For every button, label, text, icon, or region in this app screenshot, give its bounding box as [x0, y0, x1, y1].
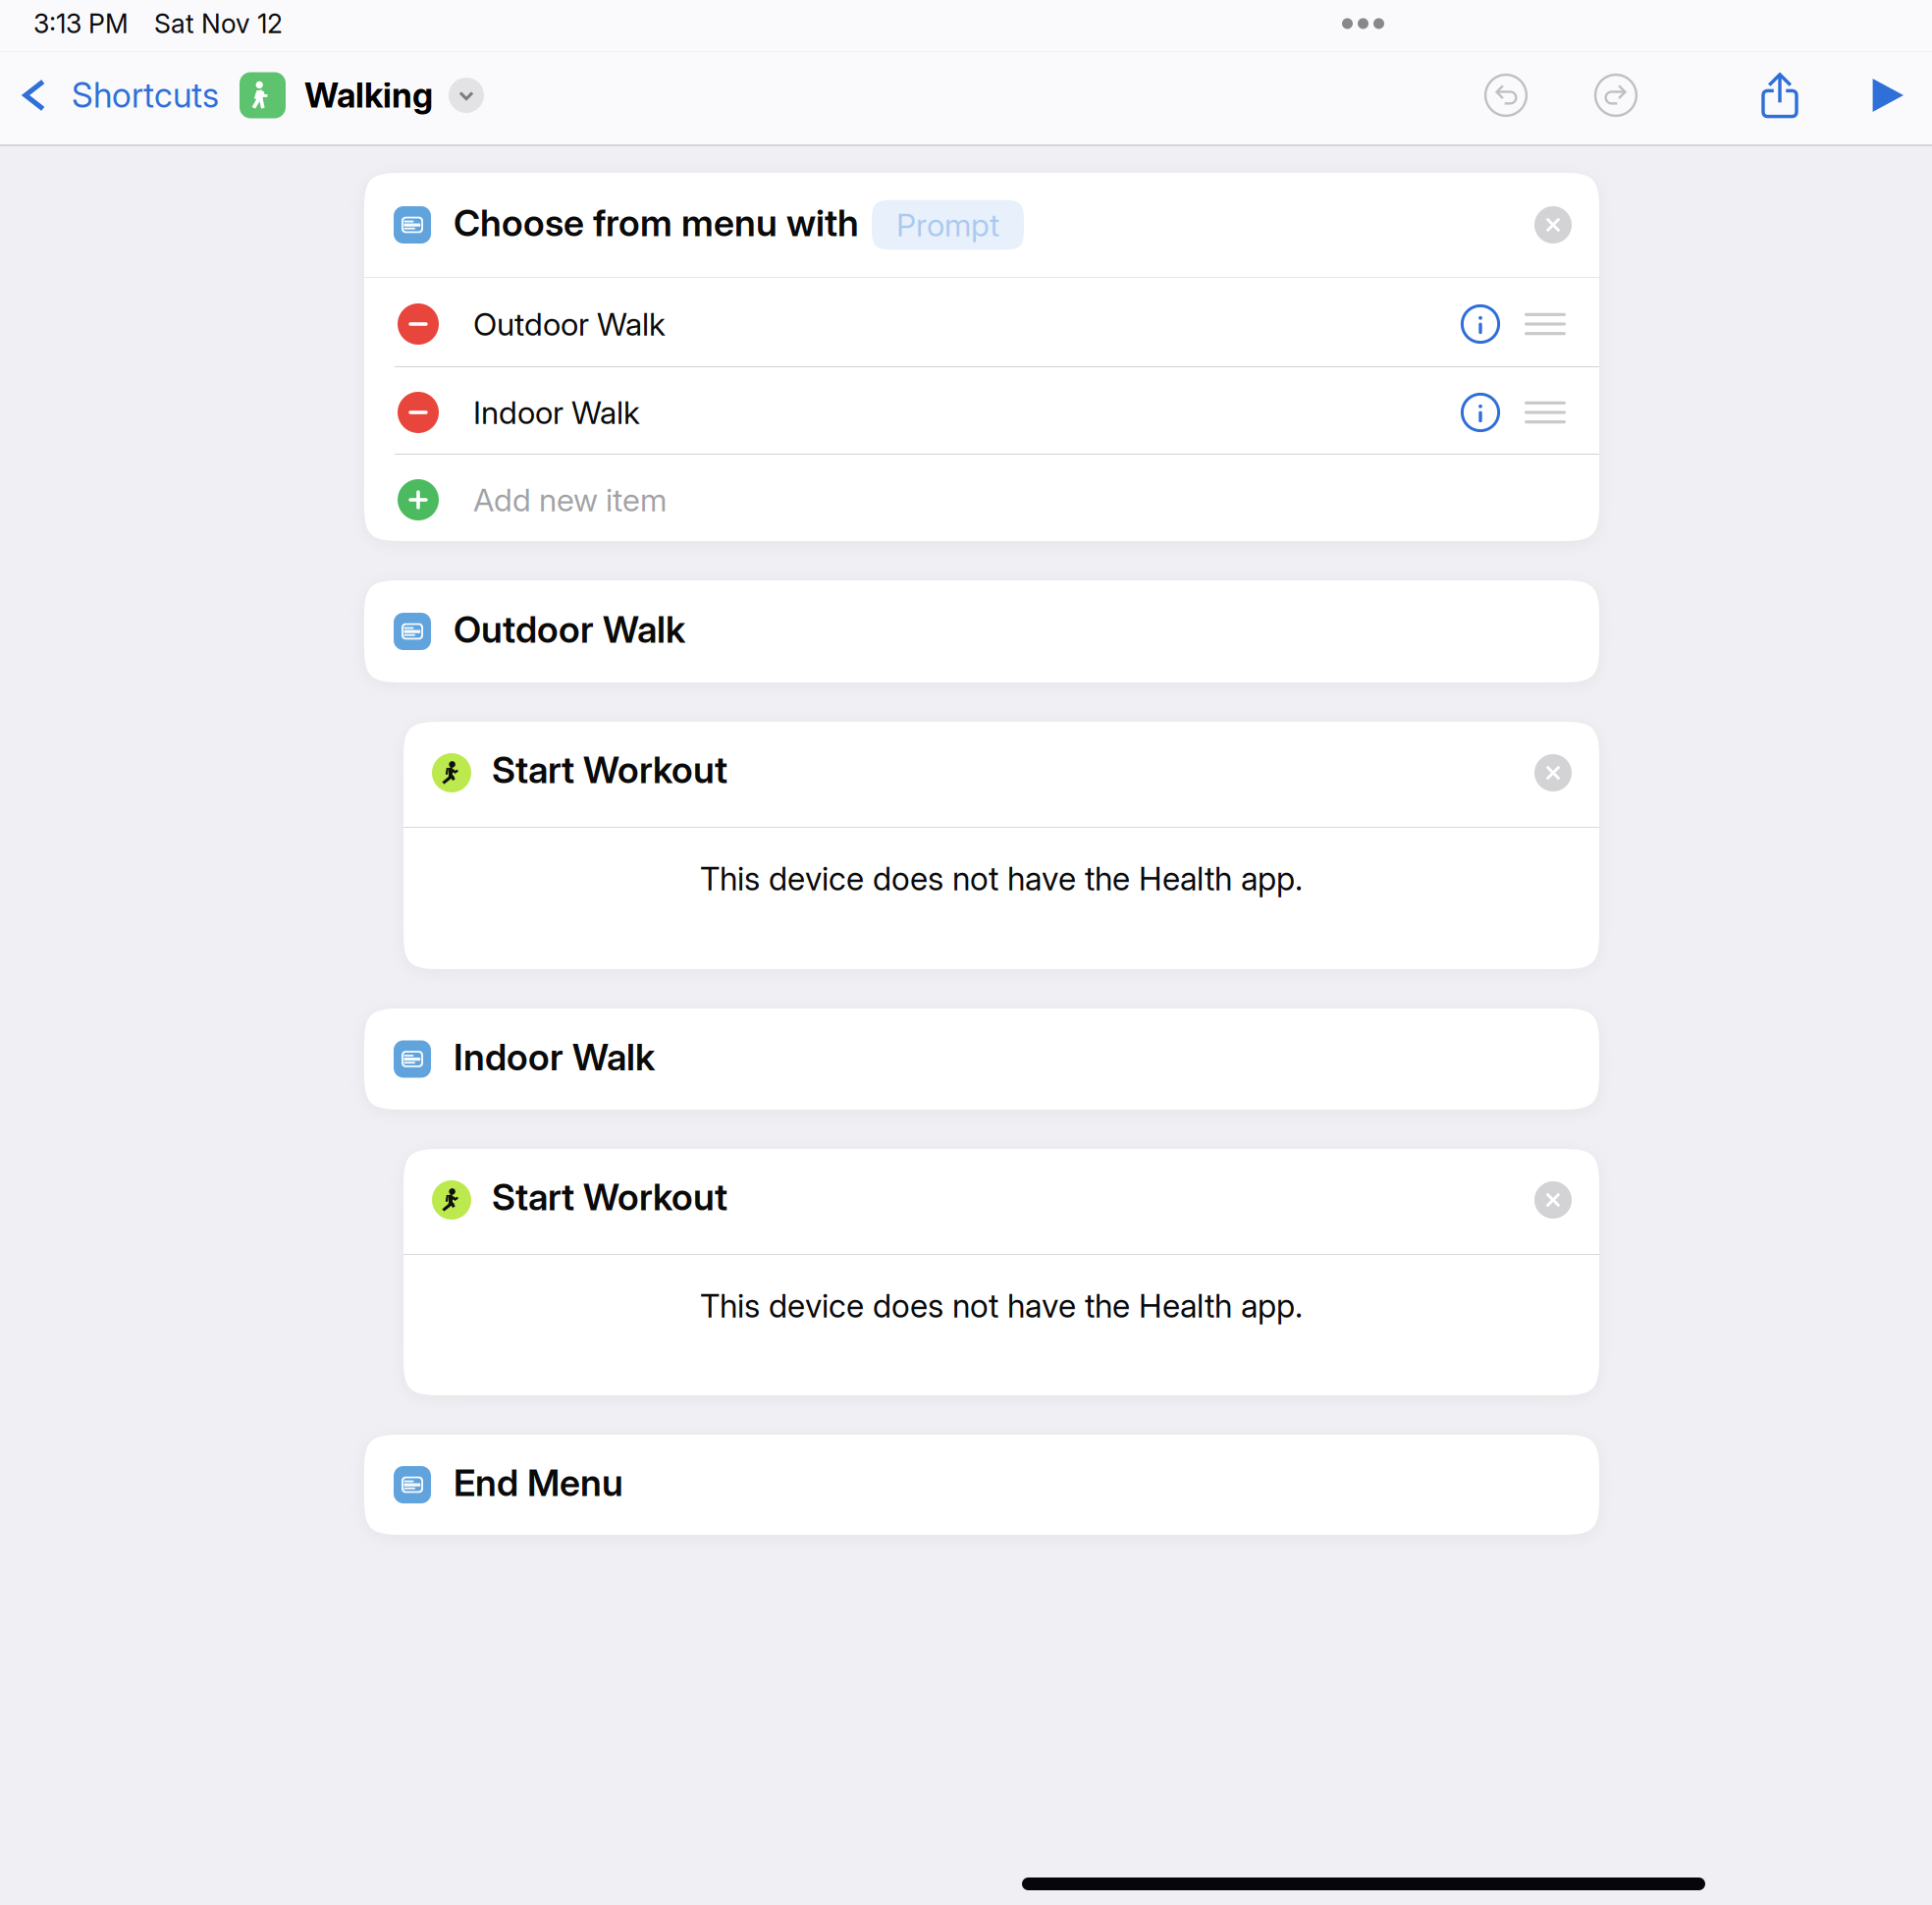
staticText: Outdoor Walk	[473, 305, 666, 343]
button[interactable]: Remove Indoor Walk	[398, 392, 439, 433]
staticText: Choose from menu with	[454, 201, 859, 245]
button[interactable]: Reorder Indoor Walk	[1525, 402, 1566, 423]
staticText: Indoor Walk	[473, 393, 640, 431]
button[interactable]: Remove action	[1534, 1181, 1572, 1219]
button[interactable]: Add new item	[364, 455, 1599, 541]
button[interactable]: Remove action	[1534, 754, 1572, 791]
button[interactable]: Details for Indoor Walk	[1461, 393, 1500, 432]
staticText: Walking	[304, 75, 433, 116]
button[interactable]: Undo	[1484, 74, 1528, 117]
staticText: Shortcuts	[72, 75, 219, 116]
staticText: 3:13 PM	[33, 8, 129, 39]
button[interactable]: Shortcuts	[18, 63, 219, 128]
button[interactable]: Indoor Walk	[364, 1008, 1599, 1110]
button[interactable]: End Menu	[364, 1435, 1599, 1535]
staticText: Start Workout	[492, 1175, 727, 1219]
button[interactable]: Walking	[219, 60, 484, 130]
button[interactable]: Run shortcut	[1869, 78, 1905, 113]
staticText: Outdoor Walk	[454, 607, 685, 652]
staticText: Start Workout	[492, 748, 727, 792]
staticText: Indoor Walk	[454, 1035, 655, 1079]
staticText: This device does not have the Health app…	[700, 859, 1303, 898]
button[interactable]: Remove action	[1534, 206, 1572, 244]
button[interactable]: Share	[1757, 73, 1802, 118]
staticText: End Menu	[454, 1461, 623, 1505]
staticText: This device does not have the Health app…	[700, 1286, 1303, 1325]
staticText: Sat Nov 12	[154, 8, 283, 39]
button[interactable]: Redo	[1594, 74, 1637, 117]
button[interactable]: Outdoor Walk	[364, 580, 1599, 682]
staticText: Add new item	[473, 481, 667, 519]
button[interactable]: Details for Outdoor Walk	[1461, 304, 1500, 344]
button[interactable]: Reorder Outdoor Walk	[1525, 314, 1566, 334]
button[interactable]: Remove Outdoor Walk	[398, 303, 439, 345]
staticText: Prompt	[896, 206, 999, 244]
